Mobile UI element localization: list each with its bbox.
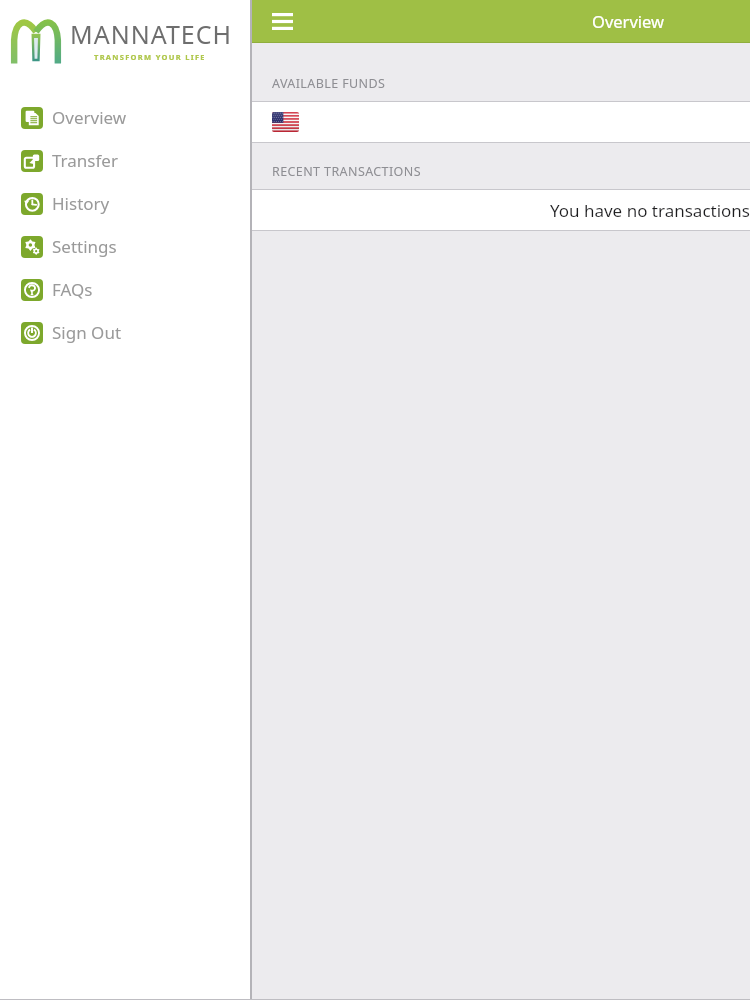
staticText: MANNATECH [70,17,233,51]
staticText: TRANSFORM YOUR LIFE [94,52,206,62]
staticText: RECENT TRANSACTIONS [272,163,421,180]
button[interactable]: Settings [0,225,250,268]
button[interactable]: Transfer [0,139,250,182]
staticText: You have no transactions [549,199,750,222]
staticText: Transfer [52,149,118,172]
staticText: FAQs [52,278,93,301]
staticText: Sign Out [52,321,122,344]
staticText: Settings [52,235,117,258]
button[interactable]: FAQs [0,268,250,311]
button[interactable]: Overview [0,96,250,139]
staticText: Overview [592,10,664,32]
button[interactable]: MANNATECH [0,0,250,78]
button[interactable]: You have no transactions [252,190,750,230]
staticText: History [52,192,110,215]
button[interactable]: History [0,182,250,225]
other: United States Dollar [272,112,299,132]
staticText: AVAILABLE FUNDS [272,75,386,92]
button[interactable]: United States Dollar [252,102,750,142]
button[interactable]: Open navigation menu [266,5,298,37]
button[interactable]: Sign Out [0,311,250,354]
staticText: Overview [52,106,127,129]
